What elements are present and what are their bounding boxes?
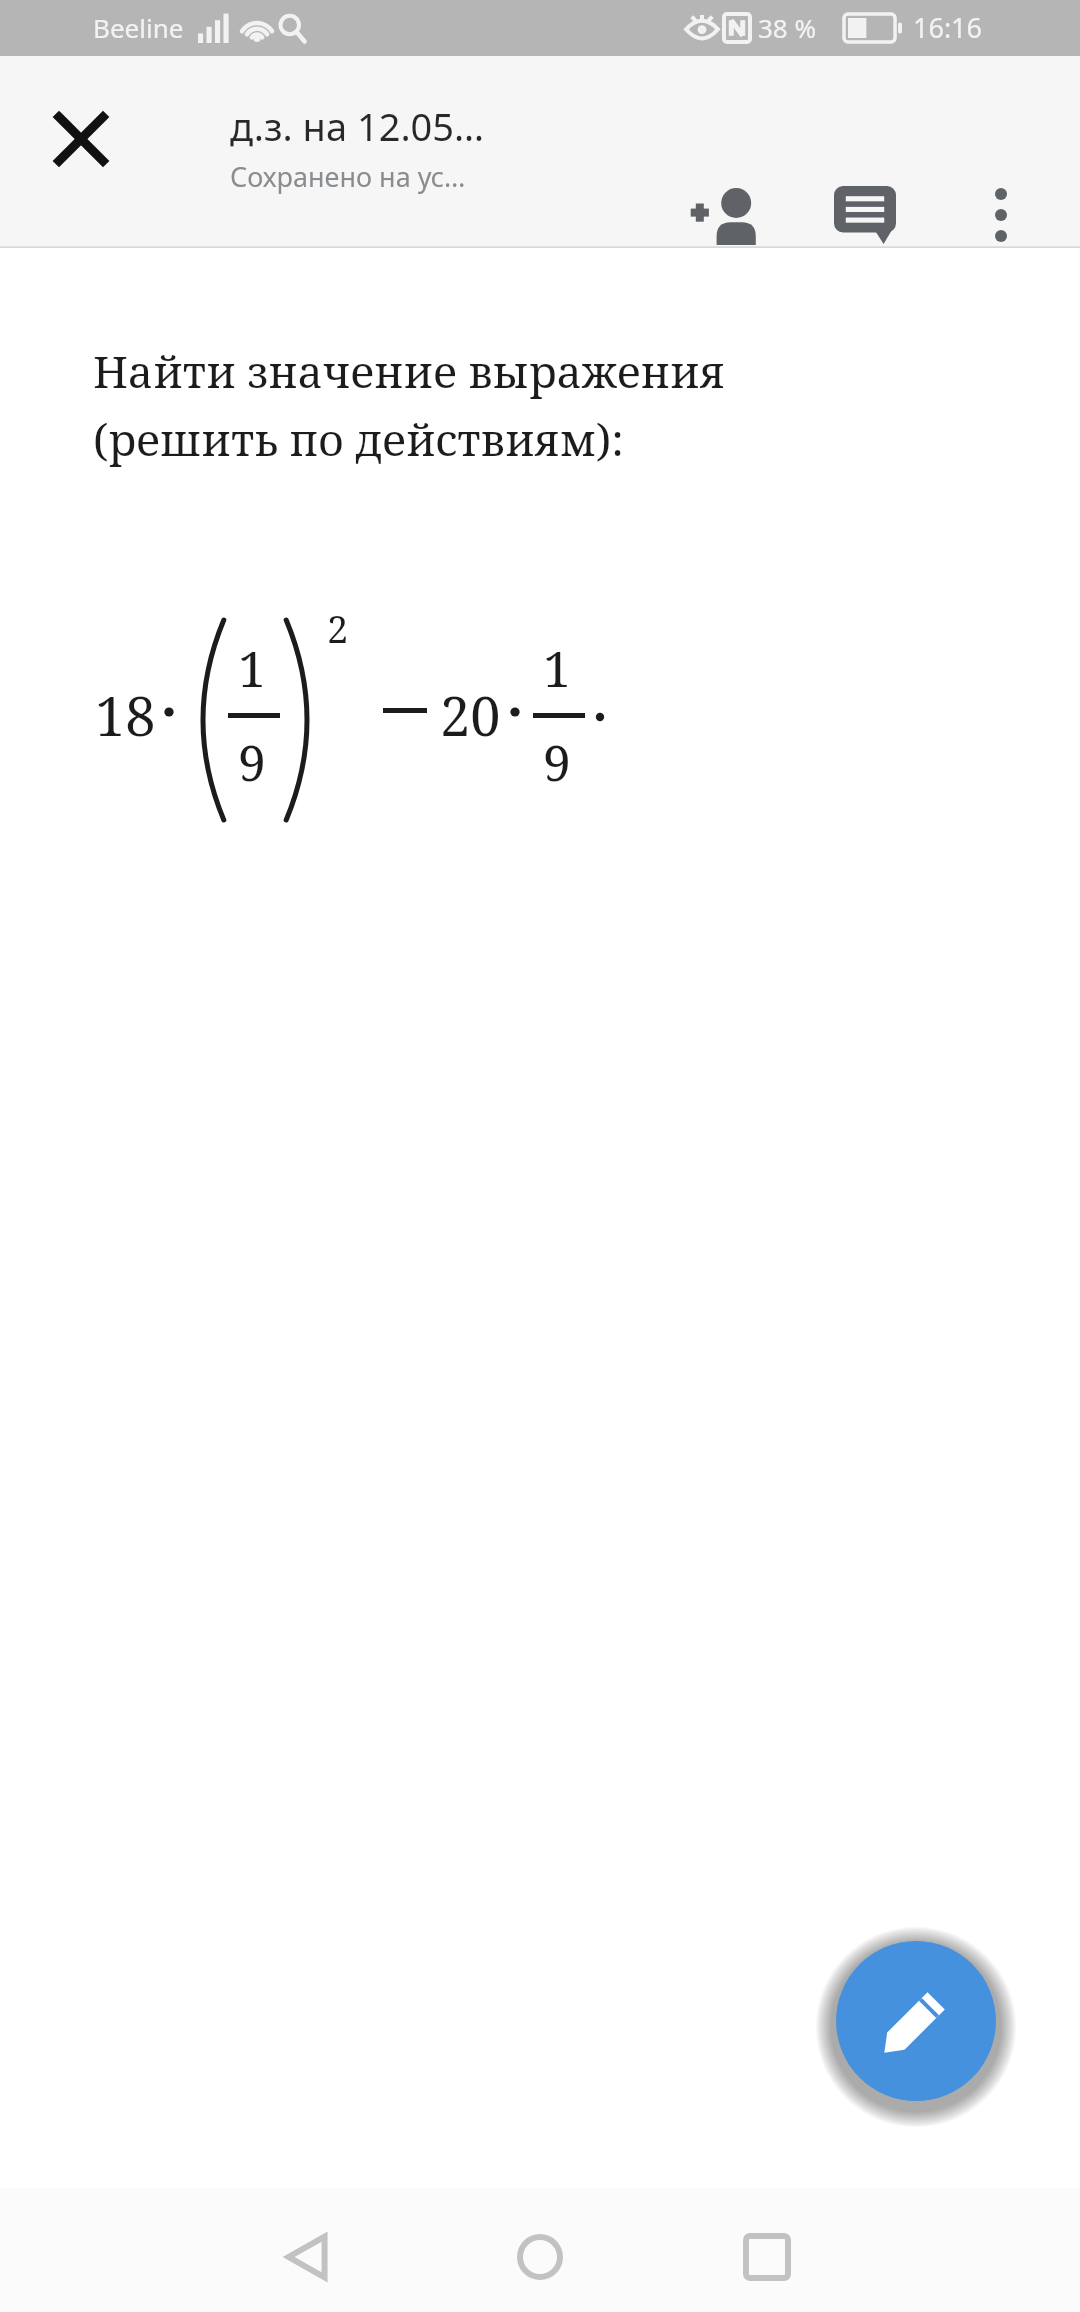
- staticText: Beeline: [93, 10, 184, 45]
- staticText: 1: [543, 634, 571, 702]
- button[interactable]: Back: [238, 2195, 378, 2312]
- button[interactable]: Close: [28, 86, 134, 192]
- staticText: 20: [440, 678, 501, 752]
- staticText: 18: [95, 678, 156, 752]
- staticText: 16:16: [913, 9, 983, 46]
- staticText: 38 %: [758, 10, 817, 45]
- staticText: Сохранено на ус…: [230, 158, 466, 195]
- staticText: д.з. на 12.05…: [230, 100, 485, 152]
- button[interactable]: Edit: [836, 1941, 996, 2101]
- staticText: 9: [543, 728, 571, 796]
- button[interactable]: Add people: [672, 162, 778, 268]
- staticText: 2: [327, 602, 349, 654]
- staticText: 1: [238, 634, 266, 702]
- button[interactable]: More options: [948, 162, 1054, 268]
- button[interactable]: Comments: [812, 162, 918, 268]
- button[interactable]: Recent apps: [697, 2195, 837, 2312]
- staticText: (решить по действиям):: [93, 409, 624, 469]
- button[interactable]: Home: [470, 2195, 610, 2312]
- staticText: 9: [238, 728, 266, 796]
- staticText: Найти значение выражения: [93, 341, 725, 401]
